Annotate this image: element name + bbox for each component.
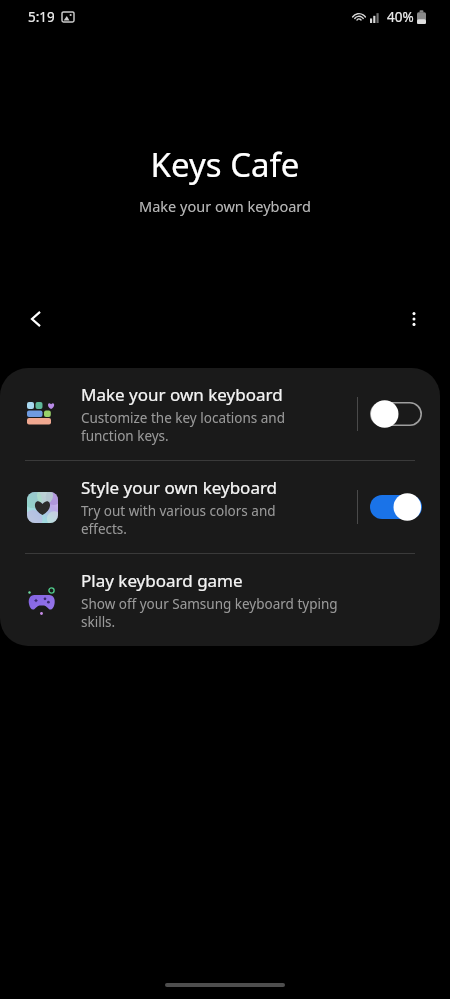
staticText: Show off your Samsung keyboard typing sk…	[81, 595, 338, 631]
button[interactable]: Play keyboard game	[0, 554, 440, 646]
staticText: Make your own keyboard	[0, 196, 450, 216]
button[interactable]: More options	[392, 297, 436, 341]
staticText: Style your own keyboard	[81, 476, 278, 499]
staticText: Keys Cafe	[0, 142, 450, 187]
staticText: Play keyboard game	[81, 569, 243, 592]
staticText: 40%	[387, 8, 414, 26]
staticText: Customize the key locations and function…	[81, 409, 286, 445]
button[interactable]: Toggle on	[370, 492, 422, 522]
button[interactable]: Toggle off	[370, 399, 422, 429]
staticText: 5:19	[28, 8, 55, 26]
button[interactable]: Back	[14, 297, 58, 341]
button[interactable]: Style your own keyboard	[0, 461, 440, 553]
staticText: Try out with various colors and effects.	[81, 502, 276, 538]
staticText: Make your own keyboard	[81, 383, 283, 406]
button[interactable]: Make your own keyboard	[0, 368, 440, 460]
